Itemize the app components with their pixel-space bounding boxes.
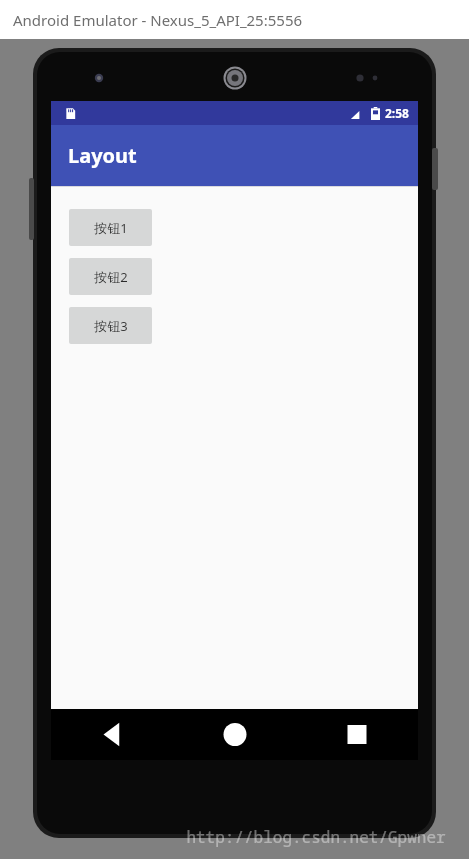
button[interactable]: Back [51,709,174,760]
staticText: 按钮3 [94,317,128,335]
button[interactable]: 按钮3 [69,307,152,344]
staticText: 按钮1 [94,219,128,237]
staticText: http://blog.csdn.net/Gpwner [186,826,446,848]
button[interactable]: Home [174,709,296,760]
staticText: Layout [68,142,137,169]
button[interactable]: Recents [296,709,418,760]
staticText: 按钮2 [94,268,128,286]
button[interactable]: 按钮2 [69,258,152,295]
staticText: Android Emulator - Nexus_5_API_25:5556 [13,10,303,30]
staticText: 2:58 [385,105,409,121]
button[interactable]: 按钮1 [69,209,152,246]
